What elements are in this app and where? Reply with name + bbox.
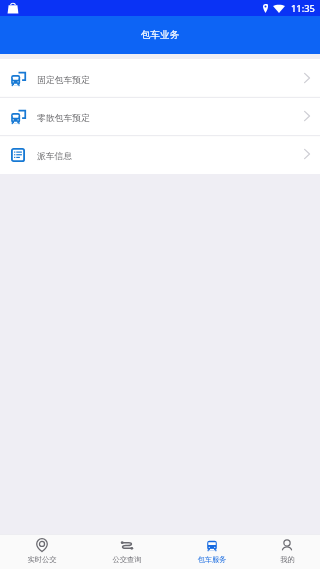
staticText: 公交查询 (112, 555, 142, 564)
staticText: 实时公交 (27, 555, 57, 564)
staticText: 固定包车预定 (37, 75, 90, 86)
button[interactable]: 派车信息 (0, 135, 320, 173)
staticText: 11:35 (291, 2, 315, 15)
staticText: 零散包车预定 (37, 113, 90, 124)
button[interactable]: 包车服务 (169, 535, 254, 569)
staticText: 包车业务 (141, 29, 180, 41)
button[interactable]: 固定包车预定 (0, 59, 320, 97)
staticText: 派车信息 (37, 151, 73, 162)
staticText: 包车服务 (197, 555, 227, 564)
button[interactable]: 我的 (254, 535, 320, 569)
button[interactable]: 实时公交 (0, 535, 84, 569)
button[interactable]: 公交查询 (84, 535, 169, 569)
button[interactable]: 零散包车预定 (0, 97, 320, 135)
staticText: 我的 (280, 555, 295, 564)
